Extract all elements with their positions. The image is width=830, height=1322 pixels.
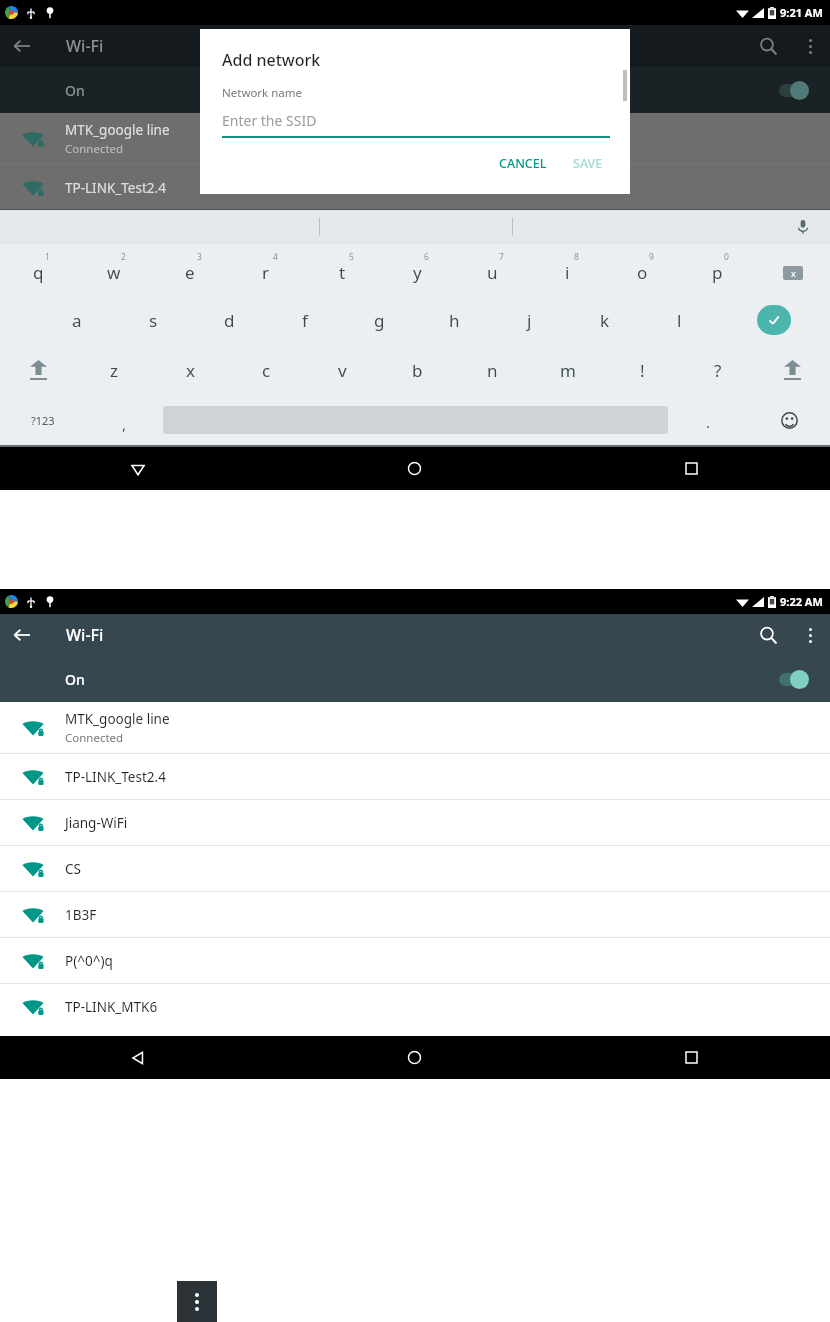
staticText: g [374, 309, 385, 332]
staticText: k [600, 309, 610, 332]
button[interactable]: Back [0, 614, 44, 656]
button[interactable]: l [642, 295, 717, 345]
button[interactable]: TP-LINK_MTK6 [0, 395, 830, 440]
button[interactable]: . [668, 395, 749, 445]
staticText: ? [714, 359, 722, 382]
button[interactable]: Voice input [792, 216, 814, 238]
button[interactable]: TP-LINK_Test2.4 [0, 754, 830, 799]
button[interactable]: ?123 [0, 395, 86, 445]
button[interactable]: 1 [0, 244, 76, 295]
button[interactable]: x [152, 345, 228, 395]
button[interactable]: 1B3F [0, 892, 830, 937]
button[interactable]: b [380, 345, 455, 395]
button[interactable]: More options [177, 1281, 217, 1322]
button[interactable]: s [115, 295, 191, 345]
button[interactable]: a [39, 295, 115, 345]
button[interactable]: Shift [755, 345, 830, 395]
button[interactable]: Done [717, 295, 830, 345]
staticText: z [110, 359, 118, 382]
button[interactable]: CS [0, 257, 830, 302]
button[interactable]: Search [746, 614, 790, 656]
staticText: j [527, 309, 532, 332]
staticText: u [487, 261, 498, 284]
staticText: Jiang-WiFi [65, 814, 128, 832]
staticText: Connected [65, 141, 124, 157]
button[interactable]: TP-LINK_Test2.4 [0, 165, 830, 210]
button[interactable]: Back [0, 447, 276, 490]
staticText: TP-LINK_Test2.4 [65, 179, 166, 197]
staticText: l [677, 309, 682, 332]
button[interactable]: Shift [0, 345, 76, 395]
button[interactable]: c [228, 345, 304, 395]
button[interactable]: d [191, 295, 267, 345]
button[interactable]: CS [0, 846, 830, 891]
button[interactable]: Search [746, 25, 790, 67]
button[interactable]: 2 [76, 244, 152, 295]
button[interactable]: MTK_google line [0, 702, 830, 753]
button[interactable]: Jiang-WiFi [0, 211, 830, 256]
button[interactable]: TP-LINK_MTK6 [0, 984, 830, 1029]
button[interactable]: ! [605, 345, 680, 395]
button[interactable]: f [267, 295, 342, 345]
button[interactable]: Delete [755, 244, 830, 295]
button[interactable]: Emoji [749, 395, 830, 445]
button[interactable]: Home [276, 447, 553, 490]
staticText: MTK_google line [65, 710, 170, 728]
button[interactable]: 4 [228, 244, 304, 295]
staticText: 5 [349, 251, 354, 263]
staticText: d [224, 309, 235, 332]
staticText: f [302, 309, 308, 332]
staticText: s [149, 309, 158, 332]
button[interactable]: 7 [455, 244, 530, 295]
button[interactable]: 8 [530, 244, 605, 295]
staticText: x [186, 359, 195, 382]
button[interactable]: m [530, 345, 605, 395]
staticText: 9:22 AM [780, 594, 823, 609]
button[interactable]: Enter the SSID [222, 111, 610, 138]
button[interactable]: j [492, 295, 567, 345]
button[interactable]: Recents [553, 1036, 830, 1079]
button[interactable]: , [86, 395, 163, 445]
button[interactable]: Back [0, 25, 44, 67]
staticText: P(^0^)q [65, 952, 113, 970]
button[interactable]: k [567, 295, 642, 345]
staticText: 2 [121, 251, 126, 263]
staticText: y [413, 261, 422, 284]
staticText: 3 [197, 251, 202, 263]
button[interactable]: P(^0^)q [0, 938, 830, 983]
button[interactable]: g [342, 295, 417, 345]
button[interactable]: Jiang-WiFi [0, 800, 830, 845]
button[interactable]: P(^0^)q [0, 349, 830, 394]
button[interactable]: 9 [605, 244, 680, 295]
button[interactable]: 0 [680, 244, 755, 295]
button[interactable]: ? [680, 345, 755, 395]
button[interactable]: On [0, 656, 830, 702]
button[interactable]: v [304, 345, 380, 395]
staticText: c [262, 359, 271, 382]
button[interactable]: Recents [553, 447, 830, 490]
button[interactable]: 6 [380, 244, 455, 295]
button[interactable]: h [417, 295, 492, 345]
staticText: o [637, 261, 648, 284]
button[interactable]: On [0, 67, 830, 113]
staticText: 9 [649, 251, 654, 263]
button[interactable]: MTK_google line [0, 113, 830, 164]
button[interactable]: Back [0, 1036, 276, 1079]
button[interactable]: Home [276, 1036, 553, 1079]
button[interactable]: 3 [152, 244, 228, 295]
staticText: TP-LINK_Test2.4 [65, 768, 166, 786]
button[interactable]: 5 [304, 244, 380, 295]
button[interactable]: 1B3F [0, 303, 830, 348]
staticText: 9:21 AM [780, 5, 823, 20]
staticText: On [65, 670, 85, 689]
button[interactable]: n [455, 345, 530, 395]
button[interactable]: z [76, 345, 152, 395]
button[interactable]: SAVE [562, 149, 614, 178]
button[interactable]: More options [790, 26, 830, 66]
button[interactable]: More options [790, 615, 830, 655]
button[interactable]: CANCEL [488, 149, 558, 178]
staticText: p [712, 261, 723, 284]
